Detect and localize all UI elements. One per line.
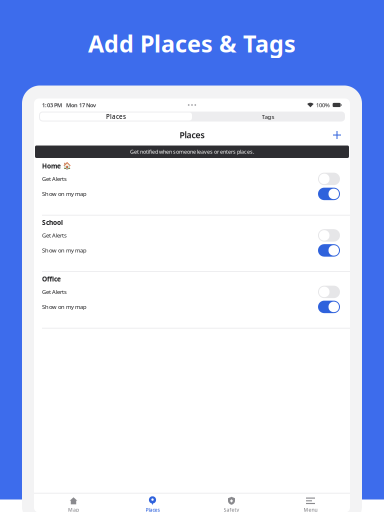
staticText: School — [42, 218, 63, 227]
button[interactable]: Get Alerts — [34, 285, 350, 299]
staticText: Places — [145, 506, 159, 512]
staticText: 100% — [316, 101, 330, 109]
button[interactable]: Safety — [192, 493, 271, 512]
staticText: Home — [42, 161, 61, 170]
staticText: Show on my map — [42, 303, 87, 311]
staticText: Places — [106, 112, 126, 121]
button[interactable]: Tags — [192, 112, 344, 120]
button[interactable]: Get Alerts — [34, 172, 350, 186]
staticText: Places — [179, 129, 204, 141]
button[interactable]: Show on my map — [34, 299, 350, 315]
staticText: Show on my map — [42, 190, 87, 198]
button[interactable]: Get Alerts — [34, 228, 350, 242]
staticText: Mon 17 Nov — [66, 101, 96, 109]
staticText: Add Places & Tags — [88, 27, 296, 59]
staticText: Get notified when someone leaves or ente… — [130, 148, 254, 155]
button[interactable]: Show on my map — [34, 186, 350, 202]
staticText: Tags — [261, 112, 274, 121]
staticText: Get Alerts — [42, 175, 67, 183]
staticText: Get Alerts — [42, 288, 67, 296]
button[interactable]: Map — [34, 493, 113, 512]
button[interactable]: Places — [113, 493, 192, 512]
button[interactable]: Places — [40, 112, 192, 120]
staticText: Menu — [303, 506, 317, 512]
staticText: Office — [42, 274, 61, 283]
staticText: 🏠 — [62, 162, 70, 170]
staticText: Map — [68, 506, 79, 512]
staticText: 1:03 PM — [42, 101, 62, 109]
button[interactable]: Show on my map — [34, 242, 350, 258]
staticText: Safety — [223, 506, 239, 512]
staticText: Show on my map — [42, 246, 87, 254]
button[interactable]: Menu — [271, 493, 350, 512]
staticText: Get Alerts — [42, 231, 67, 239]
button[interactable]: Add place — [330, 128, 344, 142]
